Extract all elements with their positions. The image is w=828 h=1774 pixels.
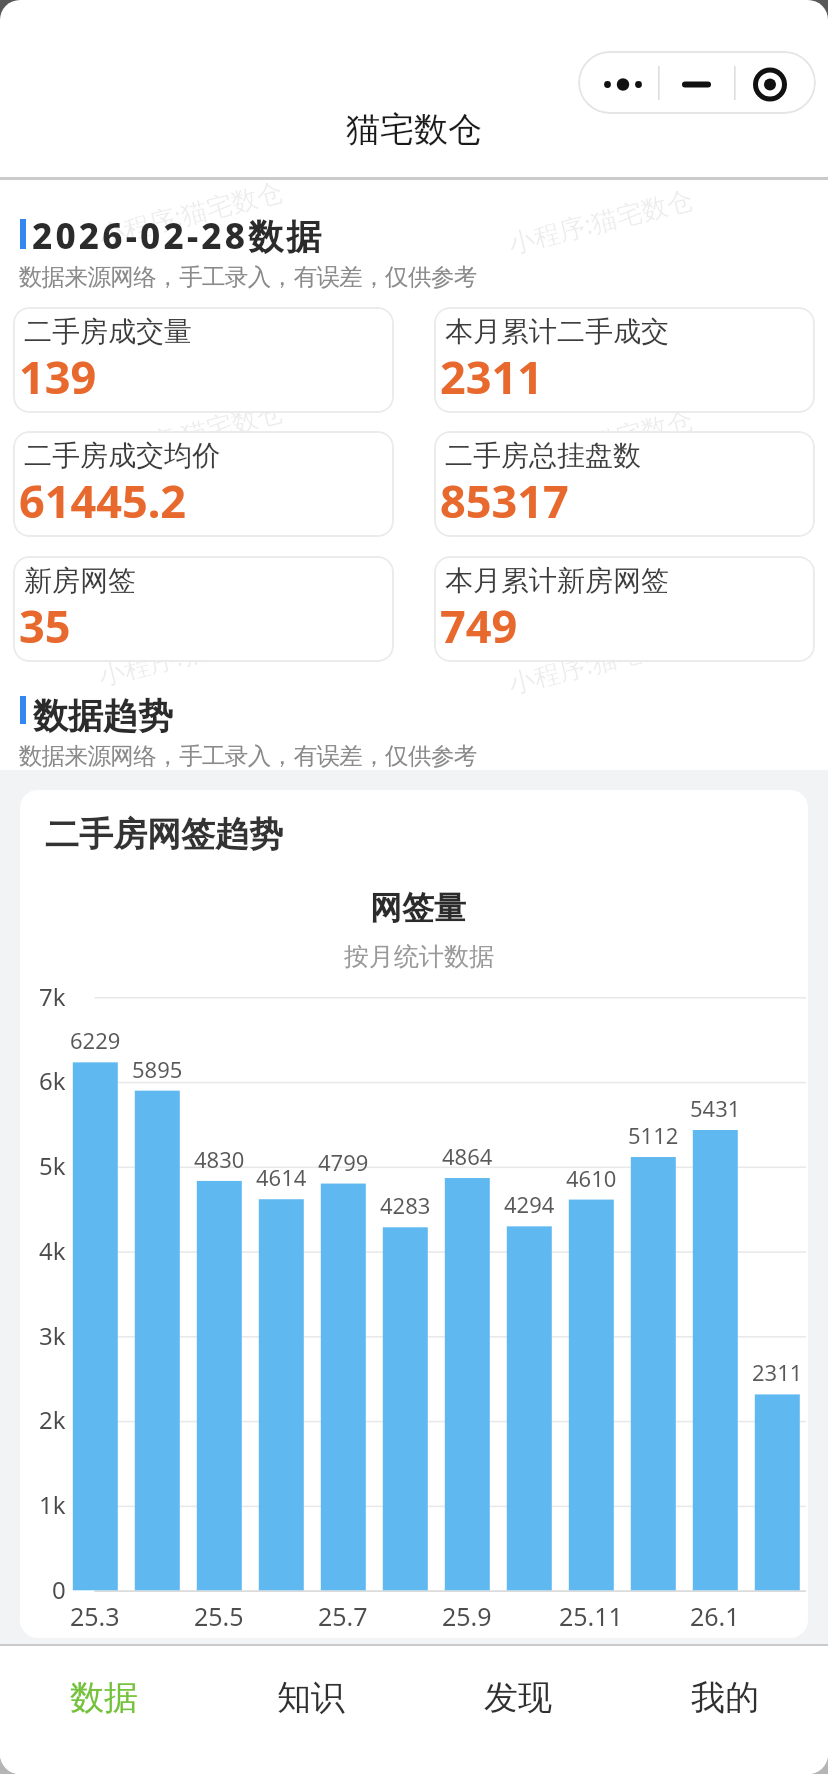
button[interactable]: 新房网签 — [13, 556, 394, 662]
staticText: 数据来源网络，手工录入，有误差，仅供参考 — [19, 262, 477, 292]
staticText: 猫宅数仓 — [346, 108, 482, 151]
staticText: 小程序:猫宅数仓 — [94, 1273, 286, 1353]
staticText: 小程序:猫宅数仓 — [504, 1501, 696, 1581]
button[interactable] — [578, 51, 816, 114]
staticText: 6229 — [70, 1025, 121, 1055]
staticText: 26.1 — [690, 1599, 740, 1633]
staticText: 数据趋势 — [33, 694, 173, 738]
staticText: 发现 — [484, 1676, 552, 1719]
staticText: 2311 — [752, 1357, 803, 1387]
staticText: 小程序:猫宅数仓 — [94, 1493, 286, 1573]
staticText: 4614 — [256, 1162, 307, 1192]
staticText: 749 — [440, 595, 518, 656]
staticText: 2311 — [440, 346, 543, 407]
button[interactable]: 二手房成交均价 — [13, 431, 394, 537]
staticText: 数据 — [70, 1676, 138, 1719]
staticText: 小程序:猫宅数仓 — [94, 613, 286, 693]
staticText: 本月累计二手成交 — [445, 314, 669, 349]
staticText: 小程序:猫宅数仓 — [504, 1061, 696, 1141]
staticText: 4k — [39, 1234, 66, 1267]
staticText: 85317 — [440, 470, 569, 531]
staticText: 6k — [39, 1064, 66, 1097]
staticText: 知识 — [277, 1676, 345, 1719]
button[interactable]: 我的 — [621, 1646, 828, 1748]
button[interactable]: 本月累计新房网签 — [434, 556, 815, 662]
staticText: 5k — [39, 1149, 66, 1182]
staticText: 4830 — [194, 1144, 245, 1174]
staticText: 小程序:猫宅数仓 — [504, 401, 696, 481]
staticText: 25.9 — [442, 1599, 492, 1633]
staticText: 61445.2 — [19, 470, 187, 531]
staticText: 小程序:猫宅数仓 — [504, 181, 696, 261]
staticText: 按月统计数据 — [344, 941, 494, 972]
button[interactable]: 二手房成交量 — [13, 307, 394, 413]
staticText: 二手房成交量 — [24, 314, 192, 349]
staticText: 25.11 — [559, 1599, 623, 1633]
staticText: 35 — [19, 595, 71, 656]
button[interactable]: 数据 — [0, 1646, 207, 1748]
staticText: 二手房成交均价 — [24, 438, 220, 473]
staticText: 新房网签 — [24, 563, 136, 598]
staticText: 4864 — [442, 1141, 493, 1171]
staticText: 2026-02-28数据 — [32, 212, 325, 260]
staticText: 数据来源网络，手工录入，有误差，仅供参考 — [19, 741, 477, 771]
staticText: 25.5 — [194, 1599, 244, 1633]
staticText: 小程序:猫宅数仓 — [504, 621, 696, 701]
staticText: 二手房网签趋势 — [45, 813, 283, 856]
button[interactable]: 二手房总挂盘数 — [434, 431, 815, 537]
staticText: 网签量 — [370, 888, 466, 928]
staticText: 小程序:猫宅数仓 — [94, 1053, 286, 1133]
staticText: 4799 — [318, 1147, 369, 1177]
button[interactable]: 知识 — [207, 1646, 414, 1748]
staticText: 小程序:猫宅数仓 — [94, 393, 286, 473]
staticText: 4294 — [504, 1189, 555, 1219]
staticText: 139 — [19, 346, 97, 407]
staticText: 二手房总挂盘数 — [445, 438, 641, 473]
staticText: 4610 — [566, 1163, 617, 1193]
staticText: 小程序:猫宅数仓 — [504, 1281, 696, 1361]
staticText: 本月累计新房网签 — [445, 563, 669, 598]
staticText: 25.7 — [318, 1599, 368, 1633]
staticText: 小程序:猫宅数仓 — [94, 833, 286, 913]
staticText: 25.3 — [70, 1599, 120, 1633]
staticText: 3k — [39, 1319, 66, 1352]
staticText: 5112 — [628, 1120, 679, 1150]
staticText: 0 — [52, 1573, 66, 1606]
staticText: 1k — [39, 1488, 66, 1521]
staticText: 4283 — [380, 1190, 431, 1220]
staticText: 2k — [39, 1403, 66, 1436]
staticText: 我的 — [691, 1676, 759, 1719]
staticText: 小程序:猫宅数仓 — [94, 173, 286, 253]
staticText: 5431 — [690, 1093, 741, 1123]
staticText: 5895 — [132, 1054, 183, 1084]
button[interactable]: 本月累计二手成交 — [434, 307, 815, 413]
button[interactable]: 发现 — [414, 1646, 621, 1748]
staticText: 7k — [39, 980, 66, 1013]
